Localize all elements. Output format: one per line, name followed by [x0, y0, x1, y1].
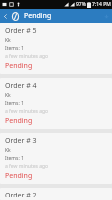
staticText: a few minutes ago — [5, 53, 49, 60]
staticText: Order # 4 — [5, 81, 37, 91]
staticText: 97% — [76, 1, 86, 8]
button[interactable]: Order # 2 — [0, 188, 112, 200]
button[interactable]: Order # 4 — [0, 78, 112, 129]
staticText: Kk — [5, 147, 11, 154]
staticText: Kk — [5, 37, 11, 44]
staticText: Items: 1 — [5, 45, 24, 52]
button[interactable]: Order # 5 — [0, 23, 112, 74]
staticText: Items: 1 — [5, 155, 24, 162]
staticText: Items: 1 — [5, 100, 24, 107]
staticText: Pending — [5, 116, 33, 126]
staticText: Order # 5 — [5, 26, 37, 36]
staticText: Order # 2 — [5, 191, 37, 197]
staticText: Pending — [5, 61, 33, 71]
button[interactable]: App logo — [10, 11, 21, 22]
staticText: a few minutes ago — [5, 163, 49, 170]
staticText: Pending — [24, 11, 52, 21]
staticText: Kk — [5, 92, 11, 99]
staticText: a few minutes ago — [5, 108, 49, 115]
staticText: Order # 3 — [5, 136, 37, 146]
staticText: 7:14 PM — [92, 1, 111, 8]
staticText: Pending — [5, 171, 33, 181]
button[interactable]: Navigate up — [0, 9, 10, 23]
button[interactable]: Order # 3 — [0, 133, 112, 184]
